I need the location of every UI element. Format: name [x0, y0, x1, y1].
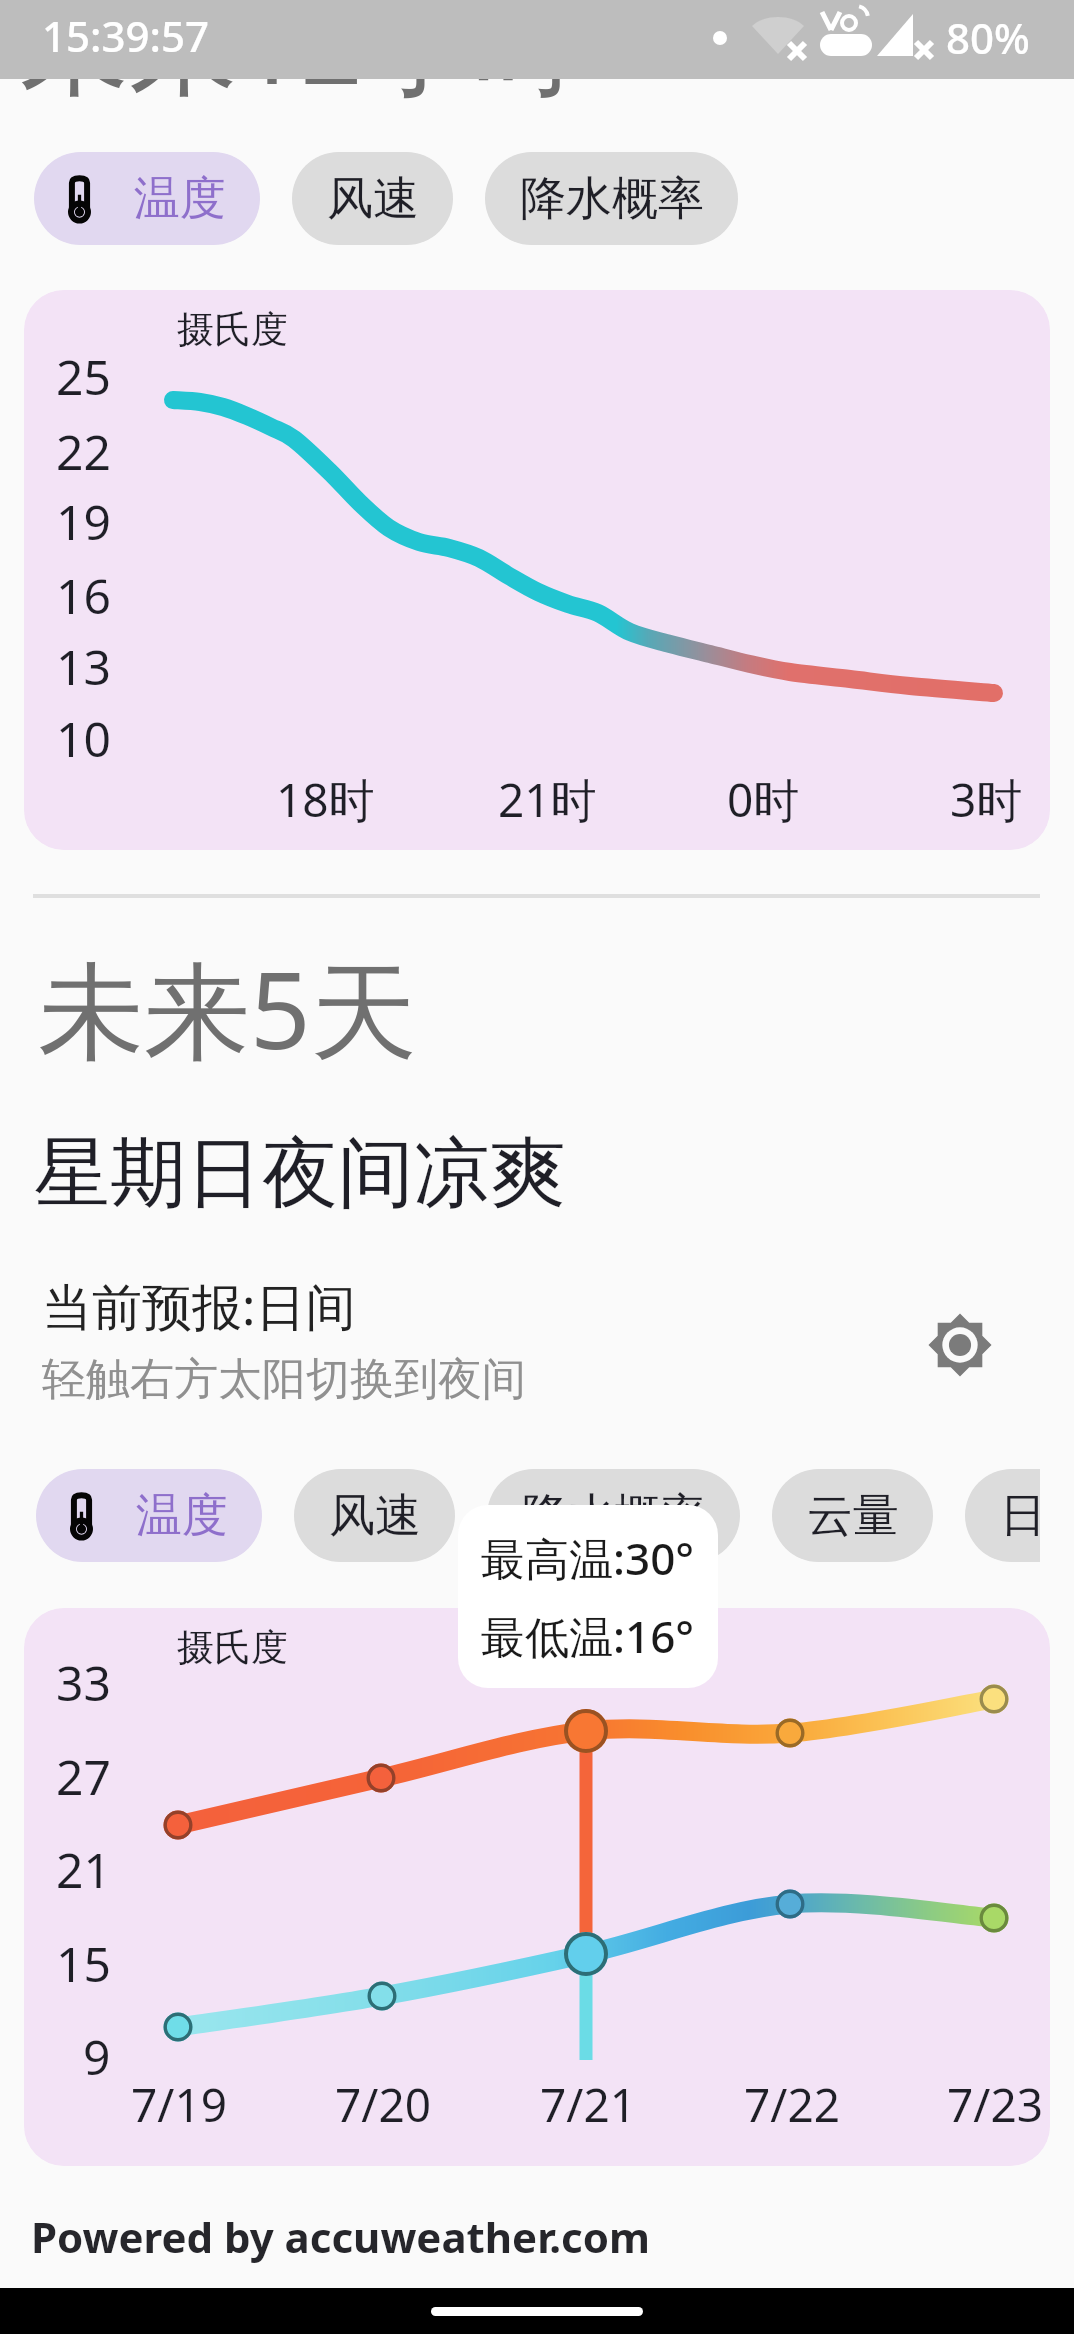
staticText: 7/21: [540, 2073, 637, 2136]
staticText: 15: [56, 1931, 111, 1996]
staticText: 33: [56, 1650, 111, 1715]
button[interactable]: 云量: [772, 1469, 933, 1562]
staticText: 18时: [276, 768, 375, 831]
staticText: 7/22: [744, 2073, 841, 2136]
button[interactable]: 降水概率: [487, 1469, 740, 1562]
staticText: 7/19: [131, 2073, 228, 2136]
staticText: 25: [56, 344, 111, 409]
staticText: 摄氏度: [177, 1624, 288, 1671]
staticText: 降水概率: [520, 170, 704, 228]
staticText: 0时: [727, 768, 800, 831]
staticText: 最低温:16°: [481, 1606, 695, 1666]
staticText: 13: [56, 634, 111, 699]
staticText: 摄氏度: [177, 306, 288, 353]
staticText: 当前预报:日间: [42, 1272, 356, 1340]
button[interactable]: 温度: [34, 152, 260, 245]
button[interactable]: 日照: [965, 1469, 1040, 1562]
staticText: 80%: [946, 9, 1030, 66]
staticText: 15:39:57: [42, 7, 209, 64]
staticText: 温度: [134, 170, 226, 228]
staticText: 10: [56, 706, 111, 771]
staticText: 9: [83, 2024, 111, 2089]
button[interactable]: 降水概率: [485, 152, 738, 245]
staticText: 21时: [498, 768, 597, 831]
staticText: 风速: [329, 1487, 421, 1545]
staticText: 22: [56, 419, 111, 484]
staticText: 7/23: [947, 2073, 1044, 2136]
button[interactable]: 风速: [292, 152, 453, 245]
staticText: 3时: [950, 768, 1023, 831]
staticText: 16: [56, 563, 111, 628]
staticText: 21: [56, 1837, 111, 1902]
staticText: 日照: [1000, 1487, 1040, 1545]
staticText: 19: [56, 489, 111, 554]
staticText: 轻触右方太阳切换到夜间: [42, 1352, 526, 1407]
staticText: Powered by accuweather.com: [31, 2208, 650, 2265]
button[interactable]: 风速: [294, 1469, 455, 1562]
button[interactable]: 切换日间夜间: [910, 1295, 1010, 1395]
staticText: 风速: [327, 170, 419, 228]
staticText: 星期日夜间凉爽: [34, 1126, 566, 1222]
staticText: 27: [56, 1744, 111, 1809]
staticText: 云量: [807, 1487, 899, 1545]
button[interactable]: 摄氏度: [24, 1608, 1050, 2166]
staticText: 最高温:30°: [481, 1528, 695, 1588]
staticText: 7/20: [335, 2073, 432, 2136]
button[interactable]: 摄氏度: [24, 290, 1050, 850]
staticText: 降水概率: [522, 1487, 706, 1545]
button[interactable]: 温度: [36, 1469, 262, 1562]
staticText: 未来12小时: [20, 0, 581, 116]
staticText: 温度: [136, 1487, 228, 1545]
staticText: 未来5天: [38, 936, 417, 1081]
